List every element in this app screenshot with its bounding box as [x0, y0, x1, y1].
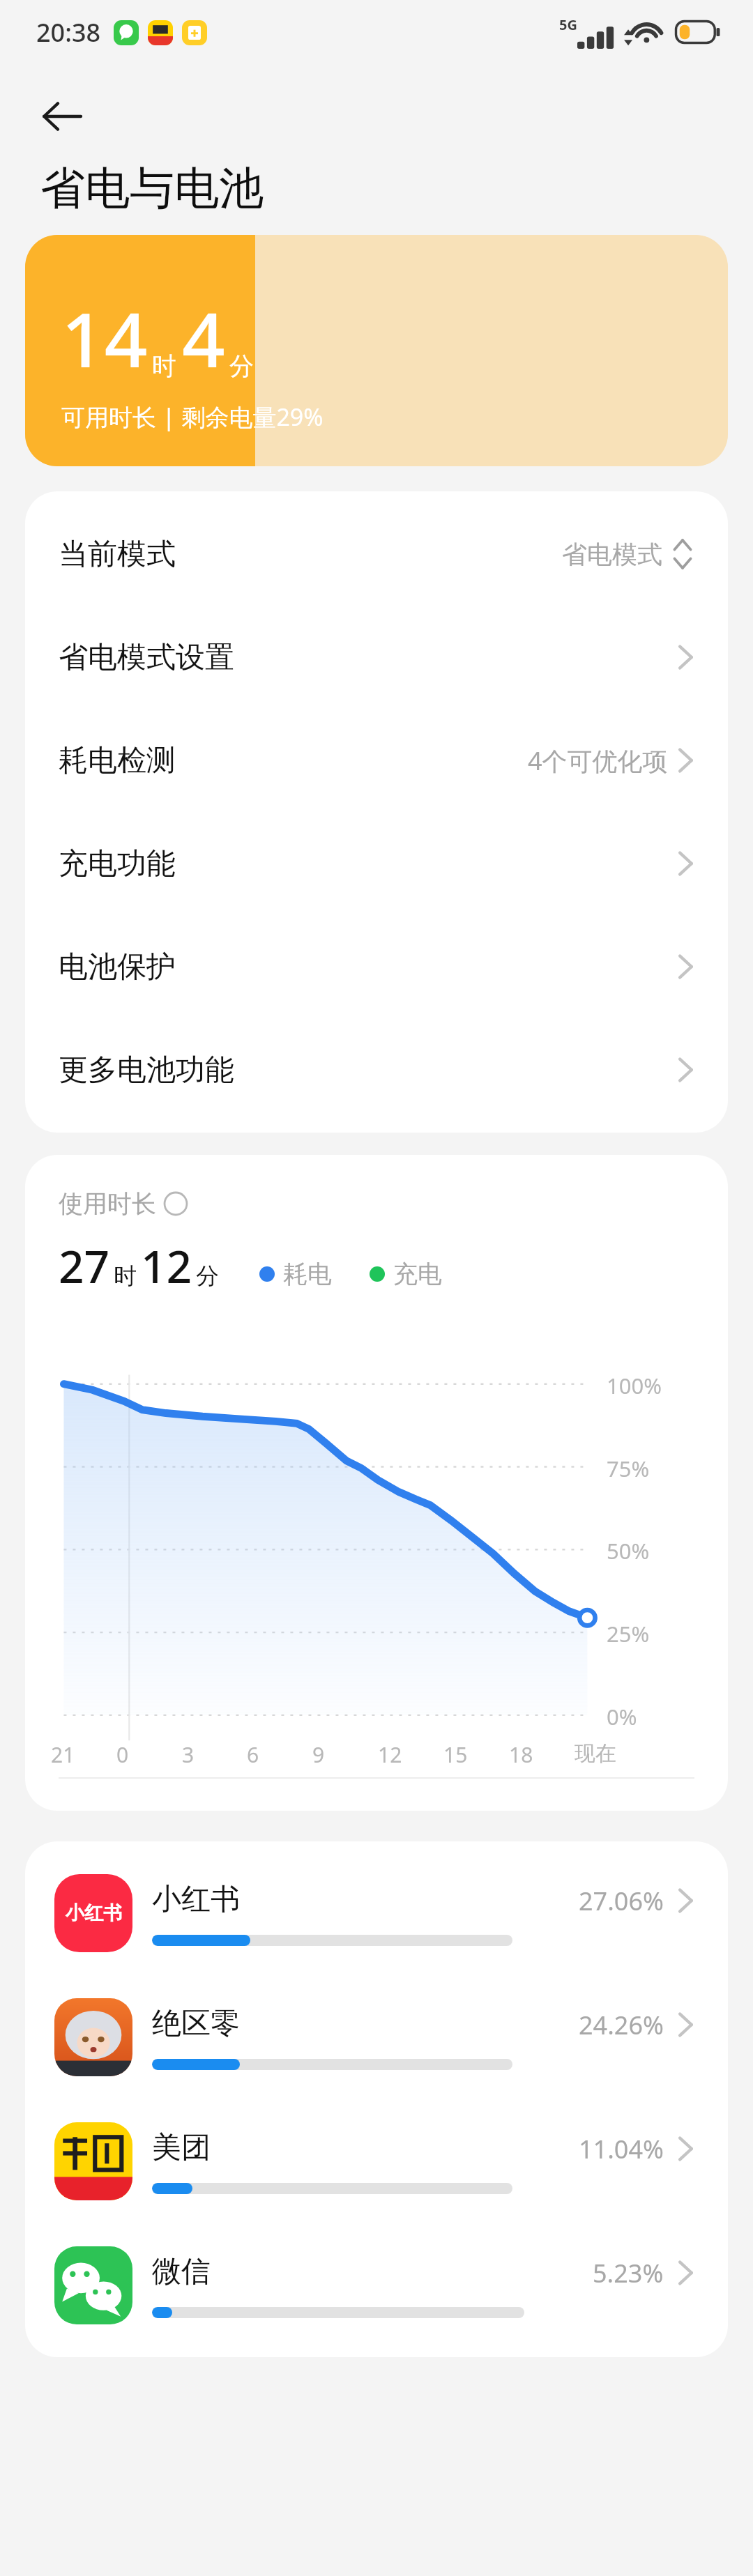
staticText: 18: [509, 1740, 533, 1769]
button[interactable]: 绝区零: [25, 1975, 728, 2099]
staticText: 5G: [559, 15, 577, 34]
staticText: 省电模式: [562, 539, 662, 570]
button[interactable]: 省电模式设置: [25, 606, 728, 709]
staticText: 时: [152, 351, 176, 381]
staticText: 小红书: [66, 1901, 122, 1925]
button[interactable]: 更多电池功能: [25, 1018, 728, 1121]
staticText: 分: [229, 351, 254, 381]
staticText: 耗电: [283, 1259, 332, 1289]
button[interactable]: Back: [28, 82, 96, 151]
button[interactable]: 微信: [25, 2223, 728, 2347]
button[interactable]: 14: [25, 235, 728, 466]
button[interactable]: 美团: [25, 2099, 728, 2223]
staticText: 分: [196, 1262, 219, 1291]
staticText: 充电: [393, 1259, 442, 1289]
staticText: 4个可优化项: [528, 744, 668, 778]
staticText: 12: [378, 1740, 402, 1769]
staticText: 14: [61, 287, 148, 390]
staticText: 4: [182, 287, 225, 390]
staticText: 现在: [575, 1740, 616, 1767]
staticText: 20:38: [36, 15, 101, 49]
button[interactable]: 充电功能: [25, 812, 728, 915]
staticText: 省电与电池: [40, 160, 264, 217]
staticText: 27: [59, 1236, 110, 1296]
staticText: 更多电池功能: [59, 1052, 234, 1089]
staticText: 6: [247, 1740, 259, 1769]
staticText: 当前模式: [59, 536, 176, 573]
staticText: 100%: [607, 1371, 662, 1400]
staticText: 充电功能: [59, 845, 176, 882]
staticText: 0%: [607, 1702, 637, 1731]
staticText: 27.06%: [579, 1884, 664, 1918]
staticText: 省电模式设置: [59, 639, 234, 676]
button[interactable]: 当前模式: [25, 503, 728, 606]
staticText: 24.26%: [579, 2008, 664, 2042]
staticText: 3: [182, 1740, 195, 1769]
staticText: 绝区零: [152, 2005, 240, 2042]
button[interactable]: 小红书: [25, 1851, 728, 1975]
staticText: 可用时长 | 剩余电量29%: [61, 401, 324, 433]
staticText: 75%: [607, 1454, 650, 1483]
staticText: 电池保护: [59, 949, 176, 986]
staticText: 小红书: [152, 1881, 240, 1918]
staticText: 11.04%: [579, 2132, 664, 2166]
staticText: 21: [51, 1740, 75, 1769]
staticText: 微信: [152, 2253, 211, 2290]
staticText: 耗电检测: [59, 742, 176, 779]
staticText: 15: [443, 1740, 468, 1769]
staticText: 时: [114, 1262, 137, 1291]
staticText: 9: [312, 1740, 325, 1769]
staticText: 使用时长: [59, 1188, 156, 1219]
staticText: 50%: [607, 1536, 650, 1565]
staticText: 25%: [607, 1619, 650, 1648]
staticText: 12: [141, 1236, 192, 1296]
staticText: 5.23%: [593, 2256, 664, 2290]
staticText: 0: [116, 1740, 129, 1769]
button[interactable]: 电池保护: [25, 915, 728, 1018]
staticText: 美团: [152, 2129, 211, 2166]
button[interactable]: 耗电检测: [25, 709, 728, 812]
